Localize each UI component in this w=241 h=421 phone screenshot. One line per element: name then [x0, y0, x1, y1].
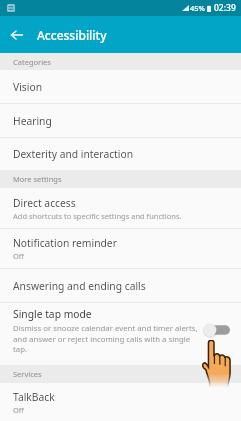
staticText: TalkBack	[13, 390, 55, 404]
button[interactable]: TalkBack	[0, 383, 241, 421]
button[interactable]: Hearing	[0, 104, 241, 137]
button[interactable]: Direct access	[0, 188, 241, 228]
staticText: Answering and ending calls	[13, 279, 146, 293]
staticText: Dismiss or snooze calendar event and tim…	[13, 323, 205, 355]
staticText: Vision	[13, 80, 43, 94]
staticText: Direct access	[13, 196, 76, 210]
staticText: Off	[13, 251, 25, 261]
staticText: Categories	[13, 57, 51, 67]
button[interactable]: Notification reminder	[0, 229, 241, 268]
button[interactable]: Back	[4, 22, 30, 48]
staticText: More settings	[13, 174, 62, 184]
staticText: Notification reminder	[13, 236, 117, 250]
staticText: Hearing	[13, 114, 52, 128]
button[interactable]: Vision	[0, 70, 241, 103]
staticText: Accessibility	[37, 27, 107, 43]
button[interactable]: Answering and ending calls	[0, 269, 241, 302]
button[interactable]: Single tap mode switch	[202, 322, 230, 338]
staticText: Single tap mode	[13, 307, 92, 321]
staticText: Services	[13, 369, 42, 379]
staticText: Add shortcuts to specific settings and f…	[13, 211, 182, 221]
button[interactable]: Dexterity and interaction	[0, 138, 241, 170]
staticText: 45%	[190, 3, 205, 13]
button[interactable]	[0, 303, 241, 365]
staticText: Off	[13, 405, 25, 415]
staticText: Dexterity and interaction	[13, 147, 134, 161]
staticText: 02:39	[214, 2, 236, 14]
